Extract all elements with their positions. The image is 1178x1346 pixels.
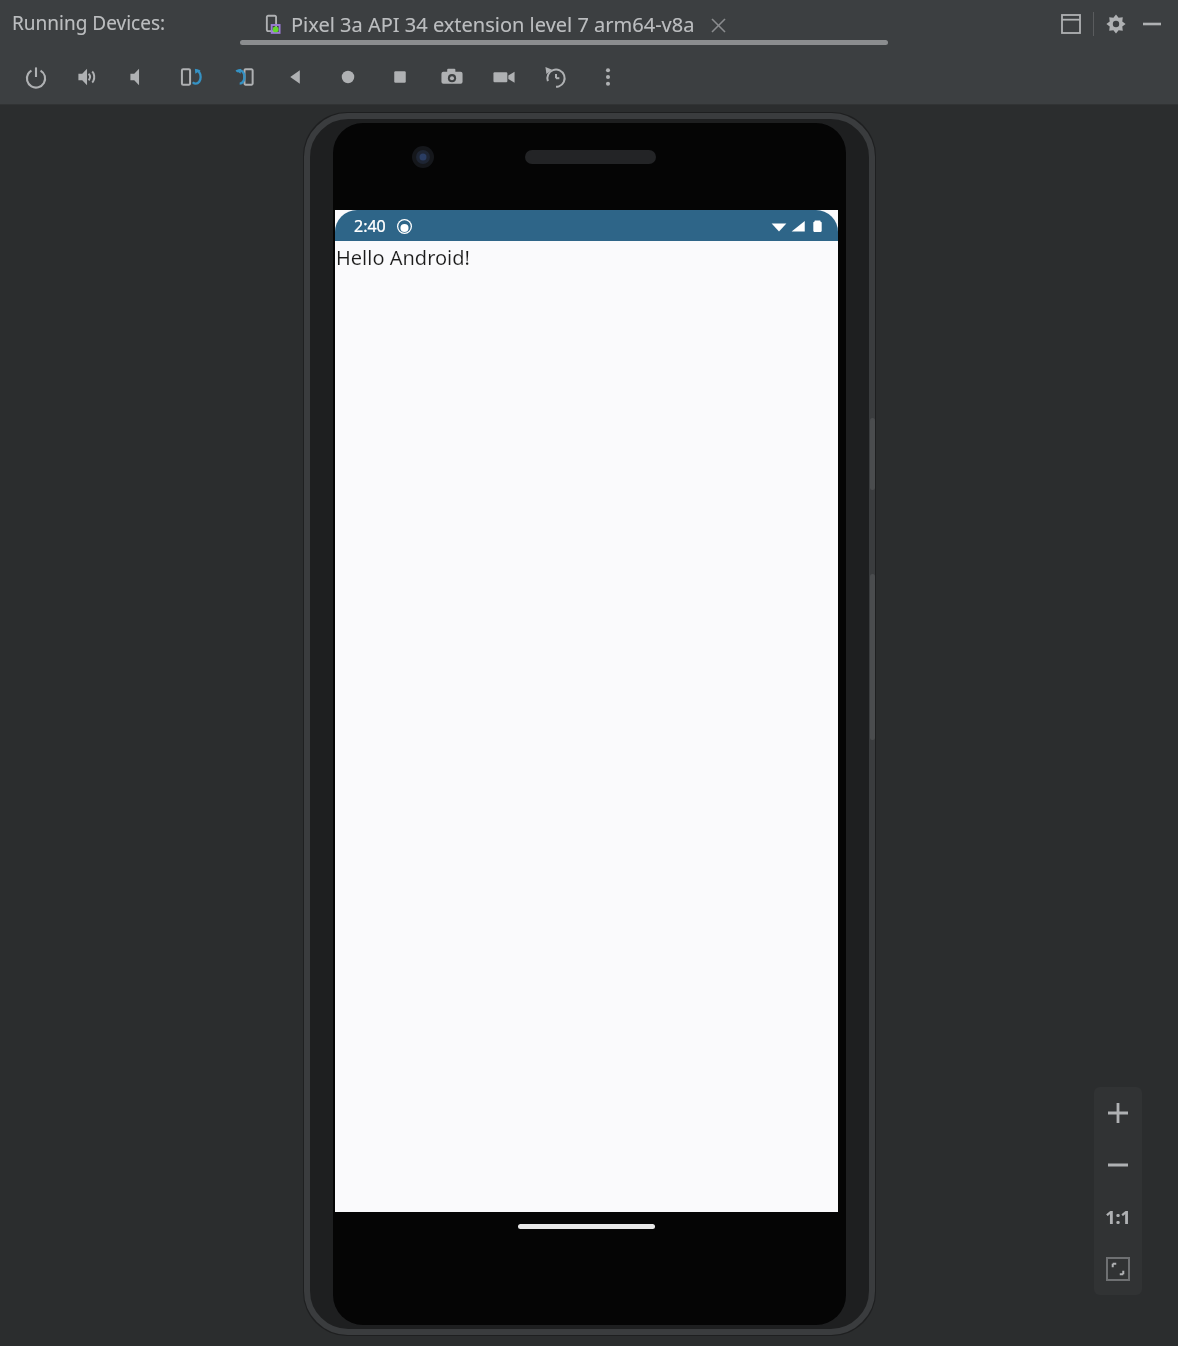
staticText: Pixel 3a API 34 extension level 7 arm64-… [291,11,695,38]
button[interactable]: Zoom in [1094,1087,1142,1139]
button[interactable]: Screenshot [426,51,478,103]
button[interactable]: Minimize [1134,6,1170,42]
button[interactable]: Zoom to fit [1094,1243,1142,1295]
button[interactable]: Power [10,51,62,103]
button[interactable]: Zoom out [1094,1139,1142,1191]
staticText: 2:40 [354,215,386,237]
button[interactable]: Settings [1098,6,1134,42]
button[interactable]: Overview [374,51,426,103]
other: Device [262,14,284,36]
button[interactable]: History [530,51,582,103]
button[interactable]: Volume down [114,51,166,103]
button[interactable]: Rotate left [166,51,218,103]
button[interactable]: Back [270,51,322,103]
staticText: 1:1 [1105,1205,1131,1230]
button[interactable]: Record screen [478,51,530,103]
button[interactable]: More [582,51,634,103]
button[interactable]: 1:1 [1094,1191,1142,1243]
staticText: Hello Android! [336,244,470,271]
button[interactable]: Rotate right [218,51,270,103]
button[interactable]: Device [262,11,731,38]
button[interactable]: Toggle panel layout [1053,6,1089,42]
button[interactable]: Close tab [705,12,731,38]
button[interactable]: Home [322,51,374,103]
staticText: Running Devices: [12,10,166,36]
button[interactable]: Volume up [62,51,114,103]
